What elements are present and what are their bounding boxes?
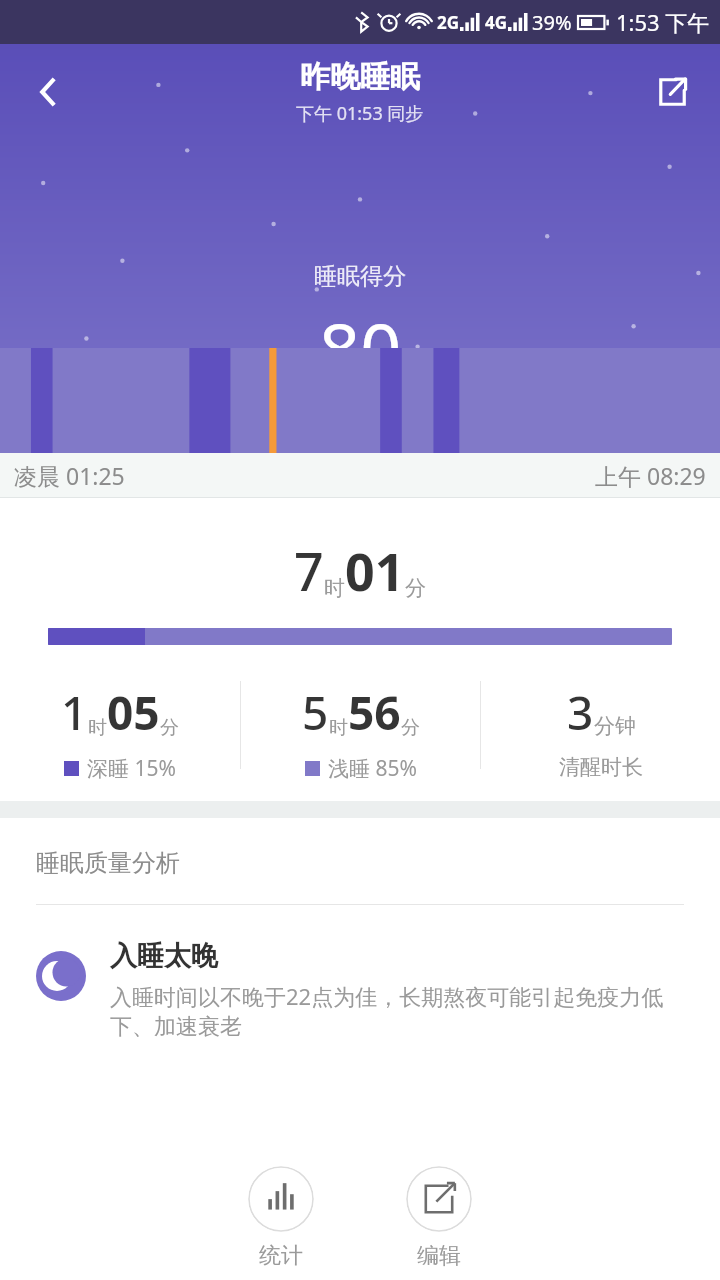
staticText: 分 [405,575,426,601]
staticText: 深睡 15% [87,754,176,783]
staticText: 80 [319,299,402,397]
staticText: 下午 01:53 同步 [296,101,424,126]
staticText: 凌晨 01:25 [14,460,125,491]
staticText: 分 [401,716,420,740]
staticText: 入睡时间以不晚于22点为佳，长期熬夜可能引起免疫力低下、加速衰老 [110,981,692,1041]
staticText: 7 [294,535,324,606]
staticText: 05 [107,681,160,744]
staticText: 入睡太晚 [110,939,218,973]
staticText: 1 [61,681,88,744]
staticText: 比54%的用户睡得香 [261,407,459,437]
staticText: 编辑 [417,1242,461,1270]
staticText: 1:53 下午 [616,7,710,37]
staticText: 睡眠得分 [314,262,406,291]
staticText: 01 [345,535,405,606]
staticText: 睡眠质量分析 [36,848,180,878]
staticText: 分钟 [594,713,636,739]
staticText: 时 [324,575,345,601]
staticText: 56 [348,681,401,744]
button[interactable]: 入睡太晚 [0,939,720,1041]
staticText: 3 [567,681,594,744]
button[interactable]: 编辑 [400,1166,478,1270]
staticText: 时 [88,716,107,740]
staticText: 4G [485,11,508,34]
staticText: 39% [532,9,572,36]
button[interactable]: 分享 [624,44,720,140]
staticText: 统计 [259,1242,303,1270]
staticText: 浅睡 85% [328,754,417,783]
staticText: 时 [329,716,348,740]
staticText: 分 [160,716,179,740]
button[interactable]: 统计 [242,1166,320,1270]
staticText: 5 [302,681,329,744]
staticText: 上午 08:29 [595,460,706,491]
staticText: 昨晚睡眠 [300,58,420,96]
staticText: 2G [437,11,460,34]
staticText: 清醒时长 [559,754,643,780]
button[interactable]: 返回 [0,44,96,140]
